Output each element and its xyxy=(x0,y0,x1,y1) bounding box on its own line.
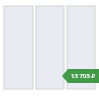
button[interactable]: Column 3 xyxy=(67,6,95,89)
button[interactable]: Price 13 705 ₽ xyxy=(62,69,99,83)
staticText: 13 705 ₽ xyxy=(69,72,97,80)
button[interactable]: Column 2 xyxy=(36,6,64,89)
button[interactable]: Column 1 xyxy=(4,6,33,89)
